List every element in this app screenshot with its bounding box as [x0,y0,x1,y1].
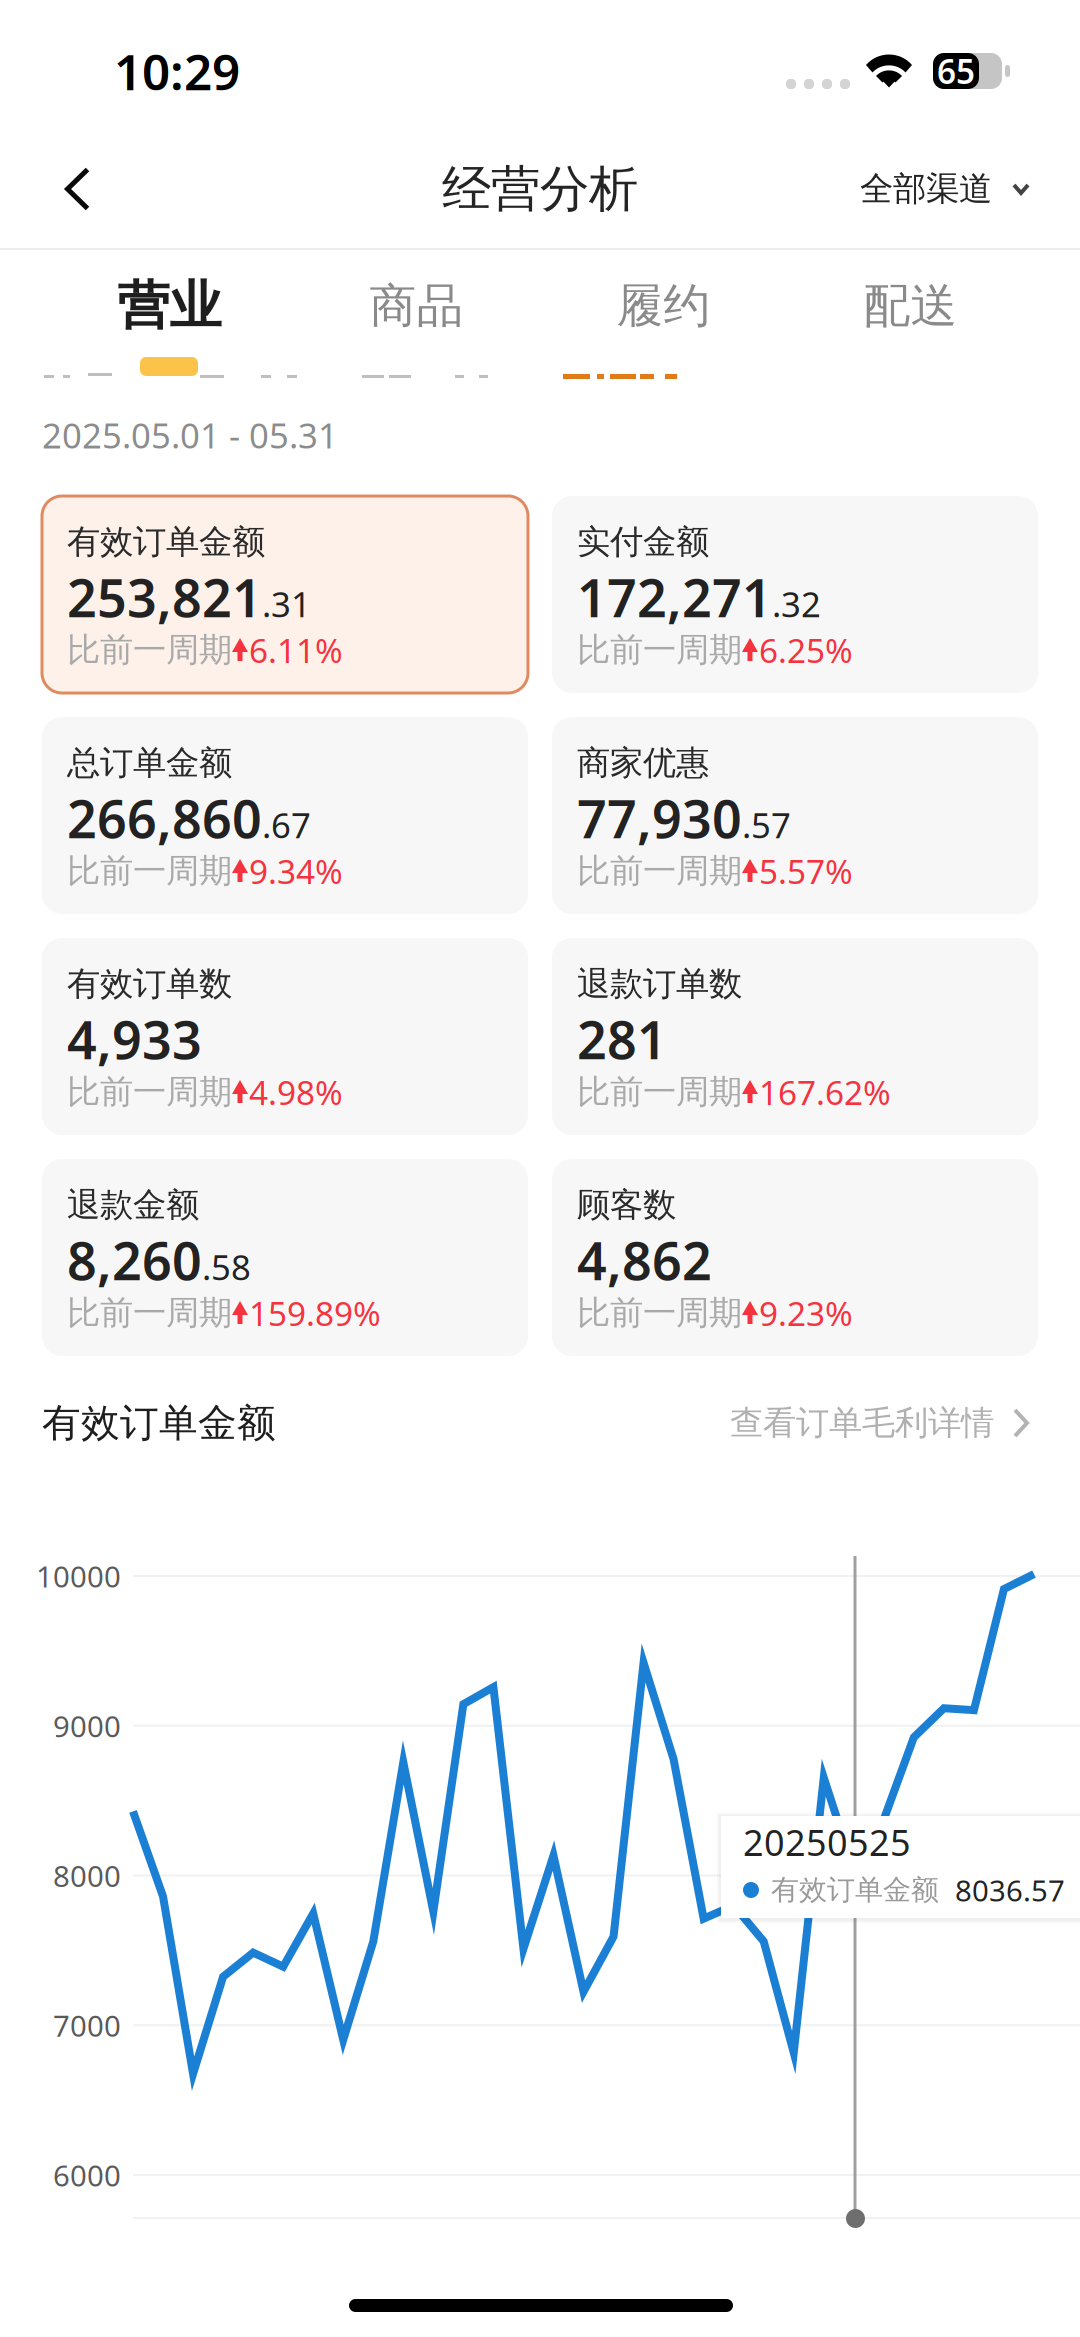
staticText: 比前一周期 [67,629,232,670]
staticText: 退款金额 [67,1184,199,1225]
staticText: 4.98% [249,1070,343,1114]
staticText: 20250525 [743,1818,911,1866]
button[interactable]: 商品 [293,247,540,359]
staticText: 营业 [117,274,221,338]
staticText: 167.62% [759,1070,891,1114]
staticText: 比前一周期 [67,1071,232,1112]
staticText: 7000 [53,2006,121,2045]
staticText: 8,260 [67,1225,202,1295]
staticText: 4,933 [67,1004,202,1074]
staticText: 9000 [53,1706,121,1745]
staticText: 9.23% [759,1291,853,1335]
staticText: 有效订单金额 [771,1873,939,1907]
staticText: 6.11% [249,628,343,672]
staticText: 281 [577,1004,667,1074]
staticText: 65 [937,49,975,93]
button[interactable]: Back [0,130,134,248]
staticText: 实付金额 [577,521,709,562]
button[interactable]: 退款金额 [42,1159,528,1356]
button[interactable]: 有效订单数 [42,938,528,1135]
staticText: 顾客数 [577,1184,676,1225]
button[interactable]: 全部渠道 [860,130,1080,248]
button[interactable]: 总订单金额 [42,717,528,914]
staticText: 2025.05.01 - 05.31 [42,412,338,458]
staticText: 总订单金额 [67,742,232,783]
staticText: 比前一周期 [67,850,232,891]
staticText: 有效订单金额 [42,1399,276,1447]
staticText: 比前一周期 [577,850,742,891]
staticText: 77,930 [577,783,742,853]
staticText: 商品 [369,277,463,335]
staticText: 8036.57 [939,1870,1065,1909]
staticText: 全部渠道 [860,168,992,209]
staticText: 配送 [863,277,957,335]
staticText: .58 [202,1244,251,1290]
staticText: 比前一周期 [577,1292,742,1333]
staticText: 比前一周期 [577,1071,742,1112]
staticText: 查看订单毛利详情 [730,1402,994,1443]
button[interactable]: 商家优惠 [552,717,1038,914]
staticText: 6000 [53,2155,121,2194]
staticText: 253,821 [67,562,262,632]
staticText: 6.25% [759,628,853,672]
button[interactable]: 顾客数 [552,1159,1038,1356]
button[interactable]: 配送 [787,247,1034,359]
staticText: 商家优惠 [577,742,709,783]
staticText: .32 [772,581,821,627]
staticText: 比前一周期 [67,1292,232,1333]
staticText: 172,271 [577,562,772,632]
staticText: 退款订单数 [577,963,742,1004]
button[interactable]: 退款订单数 [552,938,1038,1135]
staticText: 4,862 [577,1225,712,1295]
staticText: 有效订单金额 [67,521,265,562]
staticText: 8000 [53,1856,121,1895]
button[interactable]: 履约 [540,247,787,359]
staticText: 履约 [616,277,710,335]
staticText: .57 [742,802,791,848]
button[interactable]: 有效订单金额 [42,496,528,693]
button[interactable]: 查看订单毛利详情 [730,1402,1030,1443]
staticText: 经营分析 [442,159,638,219]
staticText: 10:29 [114,38,240,104]
button[interactable]: 实付金额 [552,496,1038,693]
staticText: 比前一周期 [577,629,742,670]
staticText: 159.89% [249,1291,381,1335]
staticText: 9.34% [249,849,343,893]
button[interactable]: 营业 [46,247,293,359]
staticText: .31 [262,581,311,627]
staticText: .67 [262,802,311,848]
staticText: 10000 [36,1556,121,1595]
staticText: 有效订单数 [67,963,232,1004]
staticText: 5.57% [759,849,853,893]
staticText: 266,860 [67,783,262,853]
